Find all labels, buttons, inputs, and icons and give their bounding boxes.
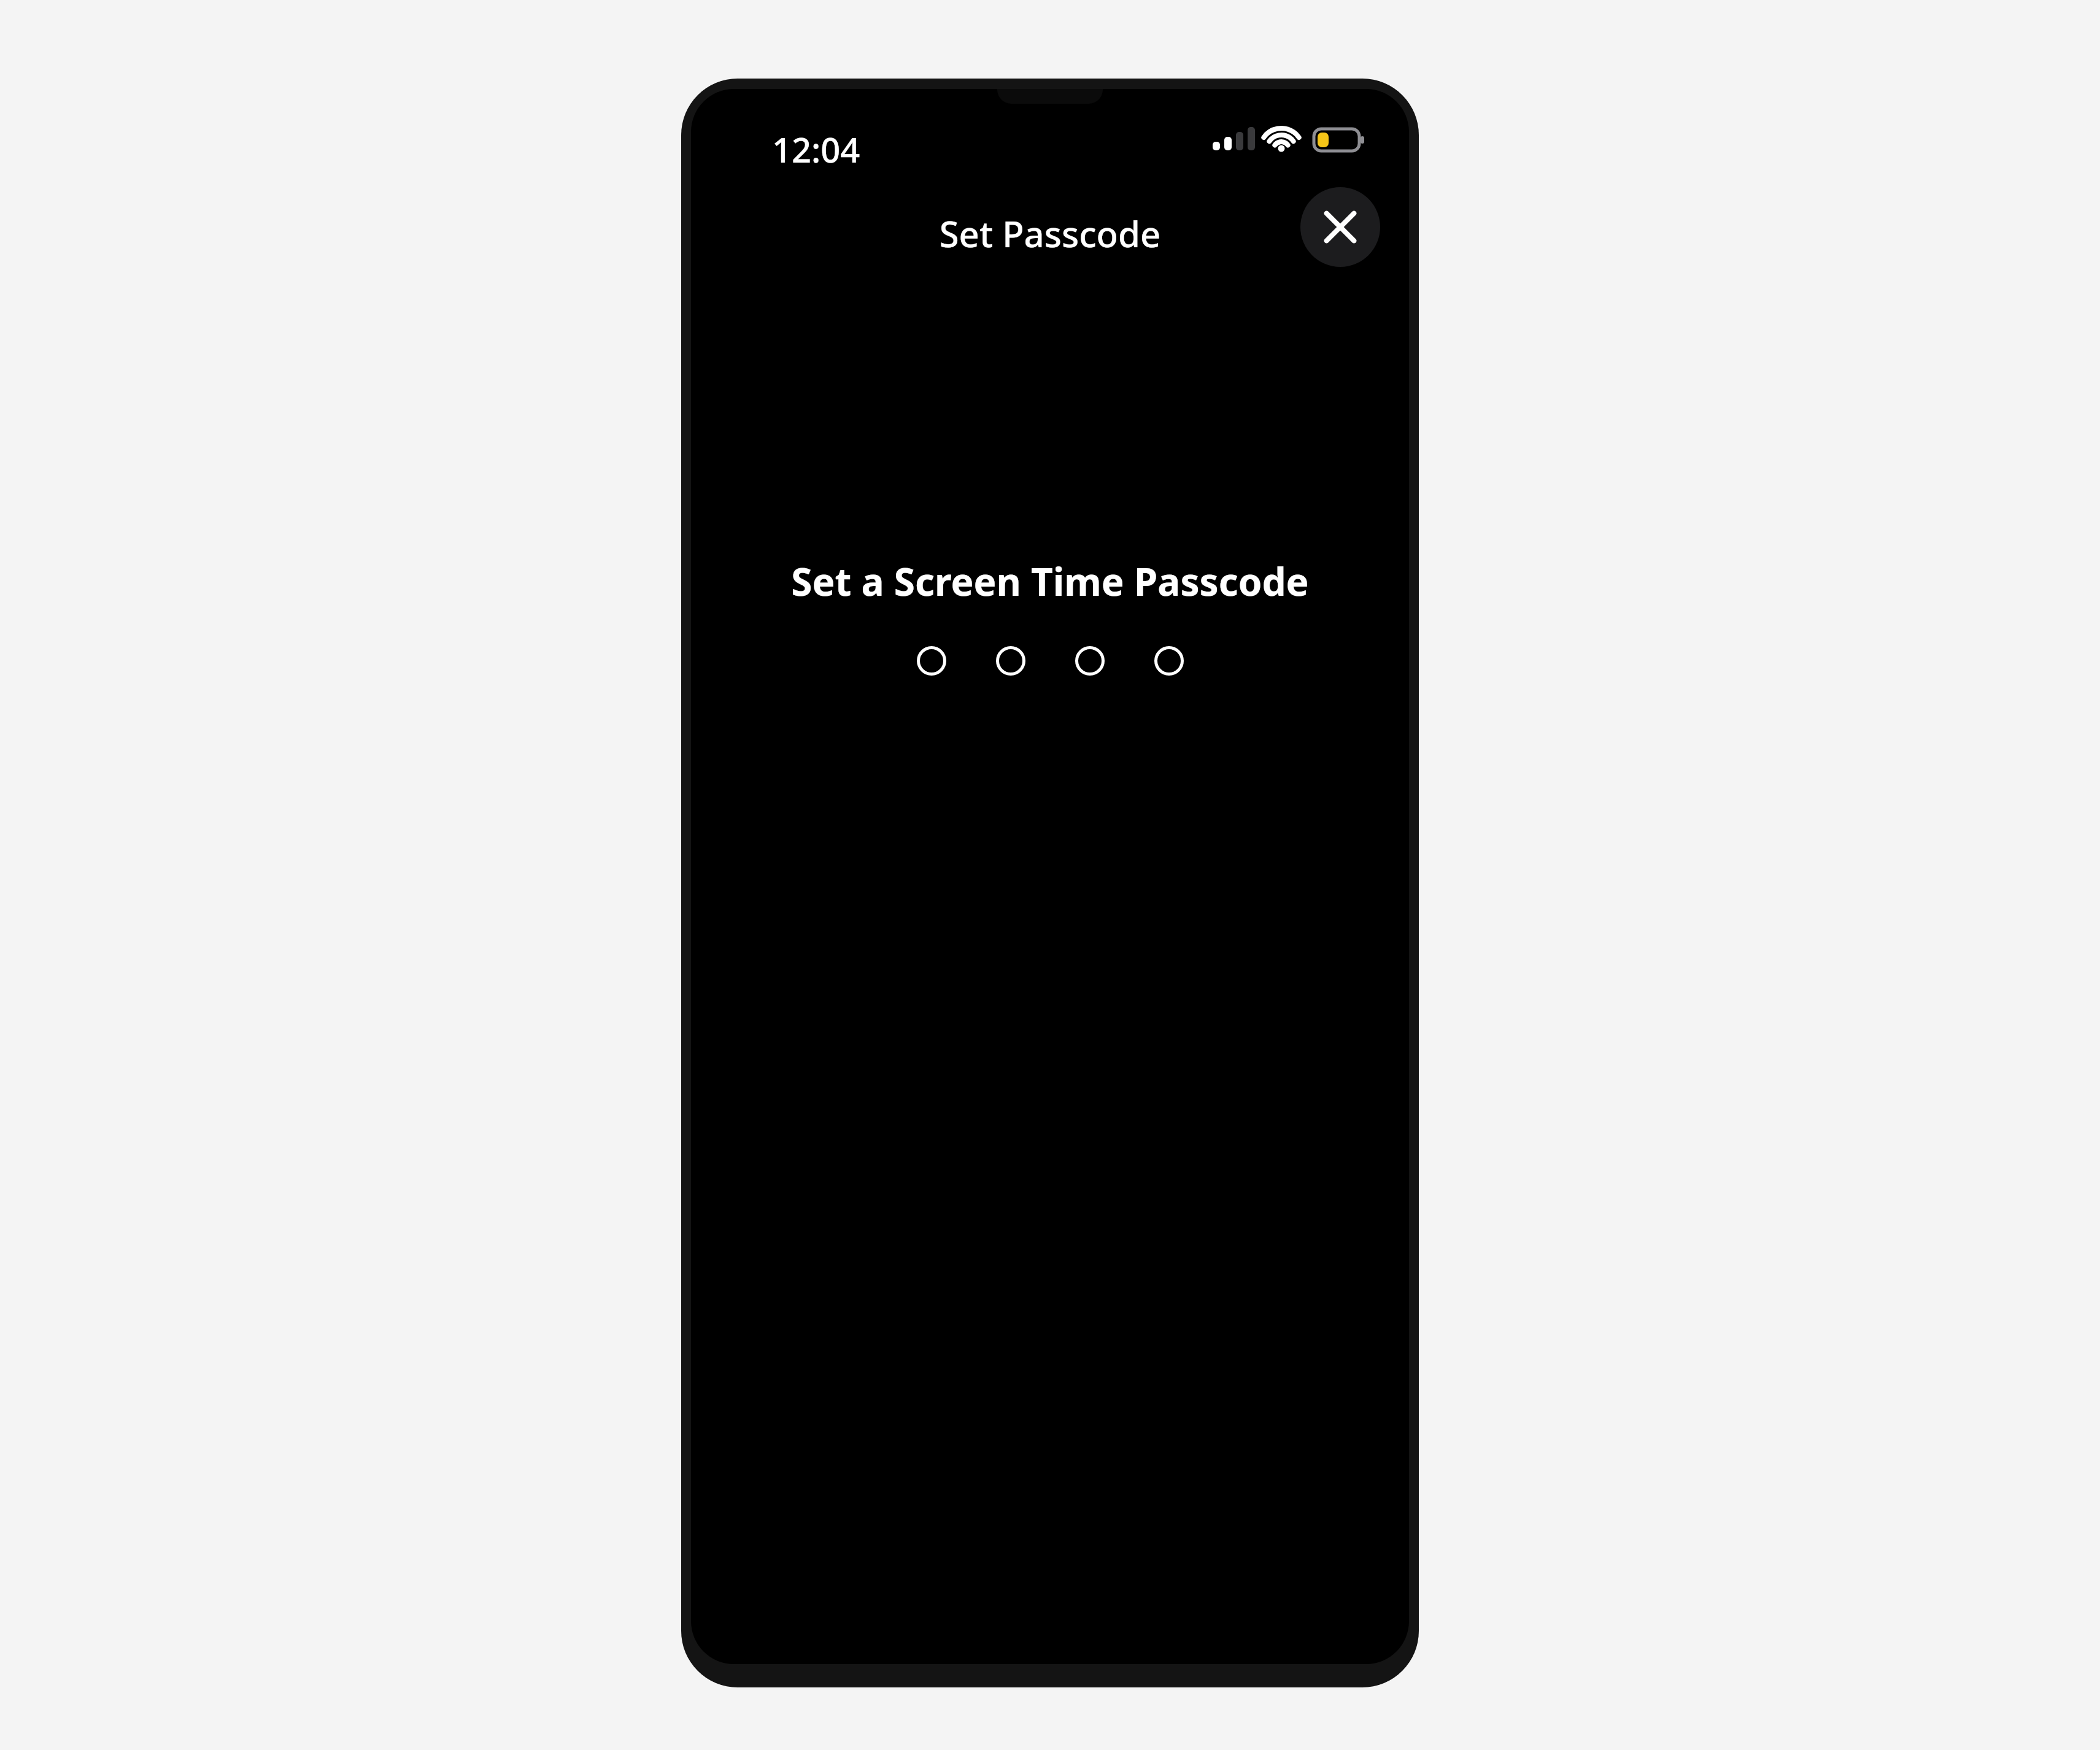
staticText: Set Passcode	[691, 209, 1409, 258]
staticText: Set a Screen Time Passcode	[791, 555, 1309, 607]
button[interactable]: Close	[1300, 187, 1380, 267]
staticText: 12:04	[772, 126, 860, 172]
